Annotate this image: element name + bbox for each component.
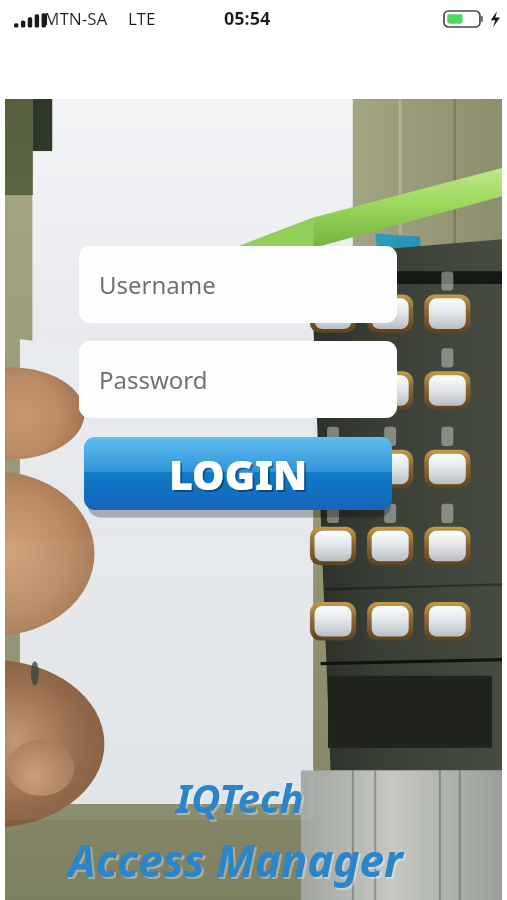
staticText: IQTech: [178, 772, 306, 826]
staticText: IQTech: [176, 770, 304, 824]
button[interactable]: Username: [79, 246, 397, 323]
button[interactable]: Password: [79, 341, 397, 418]
button[interactable]: LOGIN: [84, 437, 392, 510]
staticText: LOGIN: [171, 448, 310, 504]
staticText: Username: [99, 268, 216, 301]
staticText: Access Manager: [68, 830, 403, 890]
staticText: MTN-SA: [44, 7, 108, 30]
staticText: Password: [99, 363, 208, 396]
staticText: LOGIN: [169, 446, 308, 502]
staticText: 05:54: [224, 6, 271, 31]
staticText: Access Manager: [70, 832, 405, 892]
staticText: LTE: [128, 7, 156, 30]
